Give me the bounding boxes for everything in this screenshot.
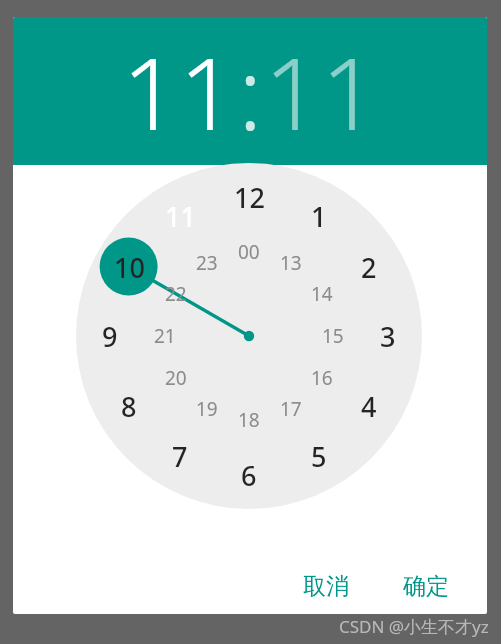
staticText: 11 (122, 23, 237, 159)
staticText: 23 (196, 250, 218, 276)
button[interactable]: 23 (185, 241, 229, 285)
staticText: 18 (238, 407, 260, 433)
button[interactable]: 10 (107, 245, 151, 289)
staticText: 11 (264, 23, 379, 159)
button[interactable]: 17 (269, 387, 313, 431)
button[interactable]: 2 (347, 245, 391, 289)
staticText: 12 (234, 179, 265, 216)
button[interactable]: 8 (107, 384, 151, 428)
staticText: 9 (102, 318, 118, 355)
button[interactable]: 20 (154, 356, 198, 400)
staticText: 22 (165, 281, 187, 307)
button[interactable]: Select minute (264, 23, 379, 159)
button[interactable]: 取消 (289, 564, 363, 609)
button[interactable]: 1 (297, 194, 341, 238)
button[interactable]: 21 (143, 314, 187, 358)
button[interactable]: 13 (269, 241, 313, 285)
button[interactable]: 12 (227, 175, 271, 219)
staticText: 确定 (403, 572, 449, 601)
staticText: 1 (311, 198, 327, 235)
button[interactable]: 3 (366, 314, 410, 358)
staticText: CSDN @小生不才yz (339, 615, 489, 638)
button[interactable]: 9 (88, 314, 132, 358)
staticText: : (238, 23, 263, 159)
staticText: 3 (380, 318, 396, 355)
button[interactable]: 19 (185, 387, 229, 431)
staticText: 13 (280, 250, 302, 276)
staticText: 11 (165, 198, 196, 235)
button[interactable]: 5 (297, 434, 341, 478)
staticText: 21 (154, 323, 176, 349)
button[interactable]: 18 (227, 398, 271, 442)
staticText: 19 (196, 396, 218, 422)
staticText: 15 (322, 323, 344, 349)
button[interactable]: 14 (300, 272, 344, 316)
button[interactable]: Select hour (122, 23, 237, 159)
staticText: 4 (361, 388, 377, 425)
button[interactable]: 16 (300, 356, 344, 400)
button[interactable]: 7 (158, 434, 202, 478)
button[interactable]: 确定 (389, 564, 463, 609)
staticText: 7 (172, 438, 188, 475)
staticText: 00 (238, 239, 260, 265)
button[interactable]: 11 (158, 194, 202, 238)
staticText: 取消 (303, 572, 349, 601)
staticText: 16 (311, 365, 333, 391)
staticText: 14 (311, 281, 333, 307)
button[interactable]: 15 (311, 314, 355, 358)
staticText: 2 (361, 249, 377, 286)
button[interactable]: 22 (154, 272, 198, 316)
staticText: 8 (121, 388, 137, 425)
staticText: 10 (114, 249, 145, 286)
button[interactable]: 6 (227, 453, 271, 497)
staticText: 5 (311, 438, 327, 475)
staticText: 6 (241, 457, 257, 494)
staticText: 20 (165, 365, 187, 391)
button[interactable]: 00 (227, 230, 271, 274)
button[interactable]: 4 (347, 384, 391, 428)
staticText: 17 (280, 396, 302, 422)
